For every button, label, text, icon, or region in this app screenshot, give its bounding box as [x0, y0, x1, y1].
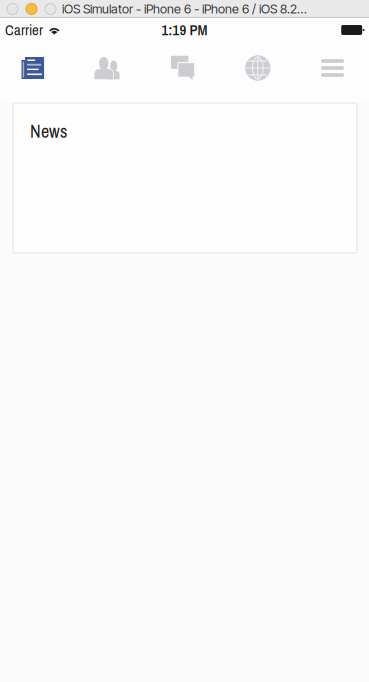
button[interactable]: More	[296, 38, 369, 98]
button[interactable]: Notifications	[221, 38, 295, 98]
button[interactable]: Minimize	[26, 3, 37, 14]
button[interactable]: Close	[7, 3, 18, 14]
button[interactable]: News Feed	[0, 38, 70, 98]
staticText: 1:19 PM	[161, 20, 207, 40]
staticText: Carrier	[5, 20, 43, 40]
staticText: News	[30, 119, 67, 143]
staticText: iOS Simulator - iPhone 6 - iPhone 6 / iO…	[62, 1, 307, 17]
button[interactable]: Friends	[71, 38, 145, 98]
button[interactable]: Messages	[146, 38, 219, 98]
button[interactable]: Zoom	[45, 3, 56, 14]
button[interactable]: News	[13, 103, 357, 253]
